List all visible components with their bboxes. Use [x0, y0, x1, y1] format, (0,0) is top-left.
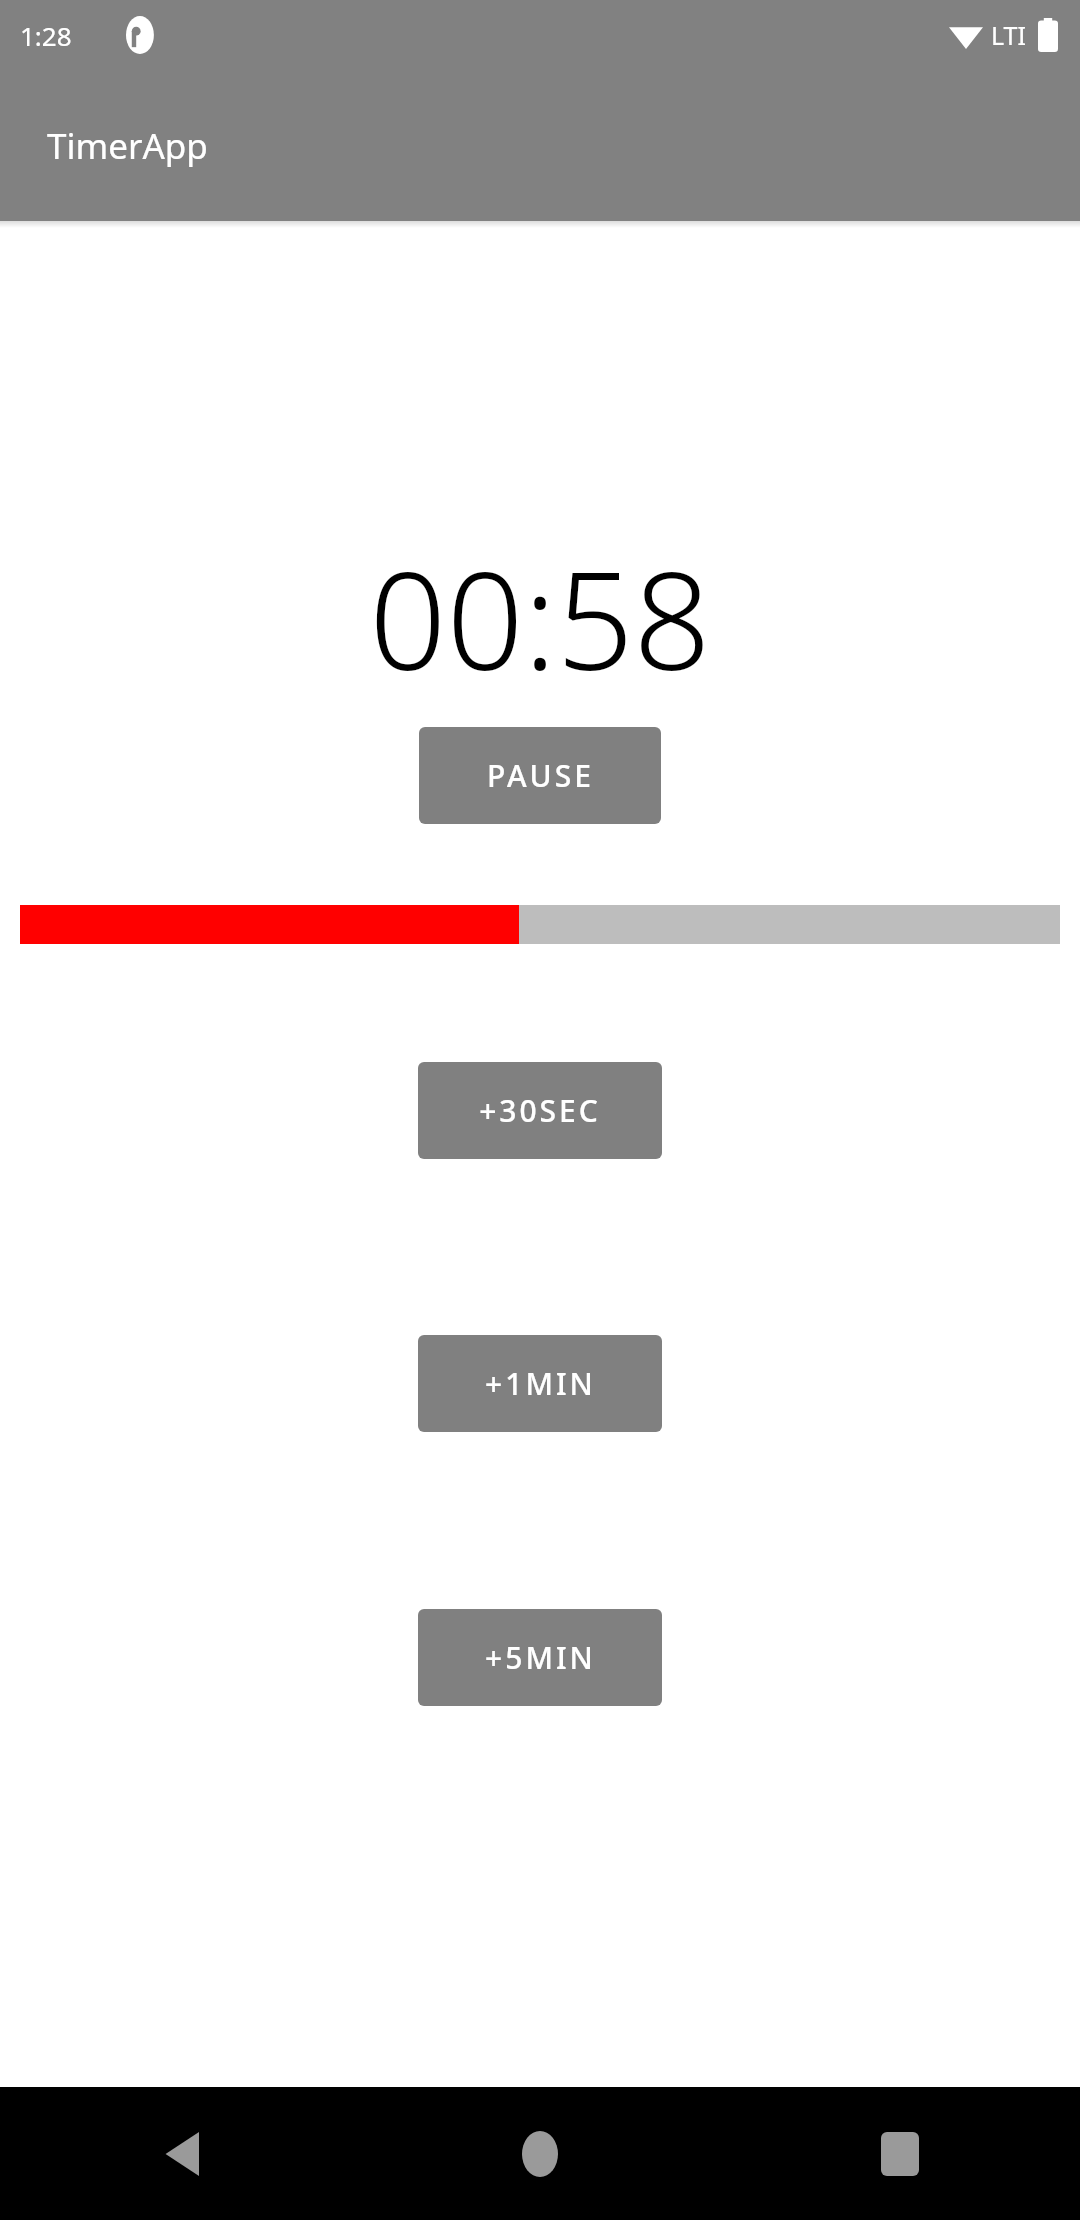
- staticText: +30SEC: [479, 1090, 601, 1131]
- button[interactable]: +1MIN: [418, 1335, 662, 1432]
- button[interactable]: PAUSE: [419, 727, 661, 824]
- button[interactable]: Recent apps: [720, 2087, 1080, 2220]
- staticText: +5MIN: [485, 1637, 596, 1678]
- staticText: +1MIN: [485, 1363, 596, 1404]
- button[interactable]: +5MIN: [418, 1609, 662, 1706]
- staticText: PAUSE: [487, 755, 594, 796]
- staticText: TimerApp: [47, 122, 208, 170]
- button[interactable]: Back: [0, 2087, 360, 2220]
- button[interactable]: Home: [360, 2087, 720, 2220]
- staticText: LTI: [991, 18, 1026, 52]
- button[interactable]: +30SEC: [418, 1062, 662, 1159]
- staticText: 1:28: [20, 18, 72, 53]
- staticText: 00:58: [0, 526, 1080, 710]
